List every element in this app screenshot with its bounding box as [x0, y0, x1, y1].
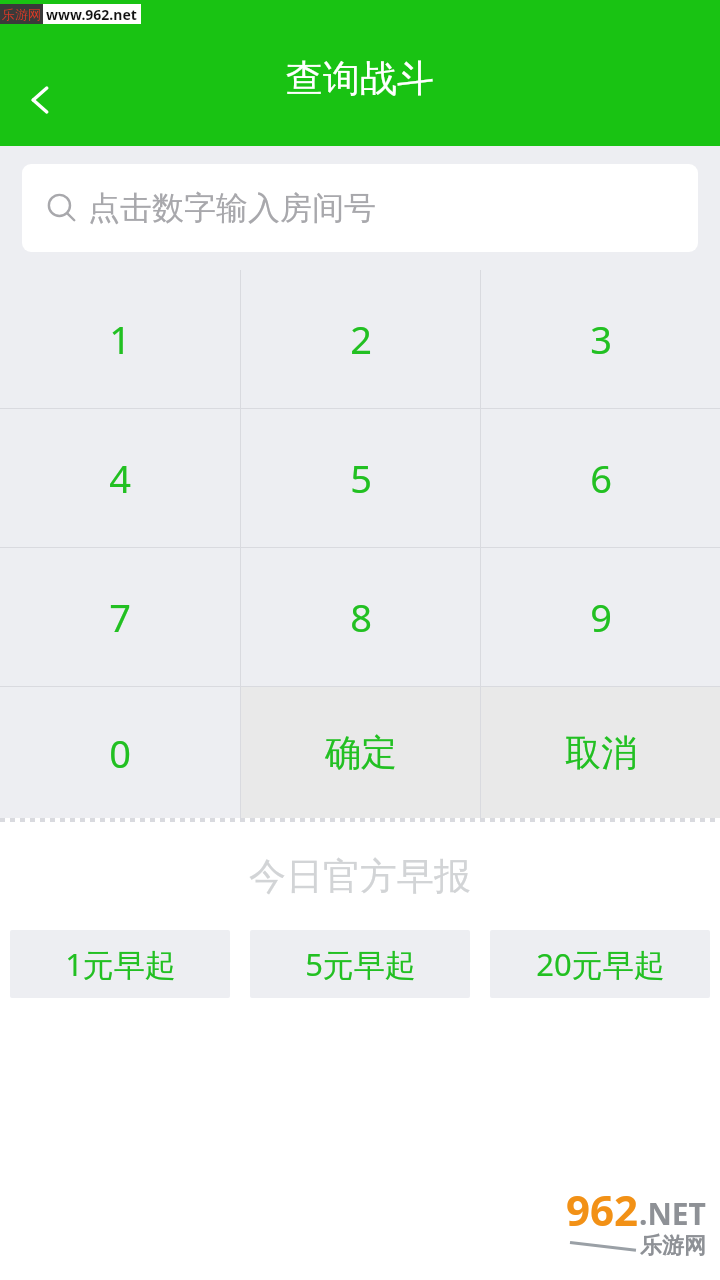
- staticText: 乐游网: [640, 1232, 706, 1260]
- staticText: 取消: [565, 730, 637, 775]
- button[interactable]: 20元早起: [490, 930, 710, 998]
- staticText: 1: [109, 313, 131, 365]
- button[interactable]: 8: [241, 548, 480, 686]
- button[interactable]: 1元早起: [10, 930, 230, 998]
- staticText: 5: [350, 452, 372, 504]
- button[interactable]: 4: [0, 409, 240, 547]
- staticText: .NET: [639, 1193, 706, 1234]
- button[interactable]: 9: [481, 548, 720, 686]
- staticText: 乐游网: [2, 6, 41, 22]
- staticText: 1元早起: [65, 943, 176, 985]
- button[interactable]: 2: [241, 270, 480, 408]
- staticText: 4: [109, 452, 131, 504]
- staticText: 20元早起: [536, 943, 665, 985]
- staticText: 6: [590, 452, 612, 504]
- staticText: 8: [350, 591, 372, 643]
- staticText: 2: [350, 313, 372, 365]
- button[interactable]: 3: [481, 270, 720, 408]
- button[interactable]: 5元早起: [250, 930, 470, 998]
- staticText: 9: [590, 591, 612, 643]
- staticText: 查询战斗: [286, 55, 434, 102]
- button[interactable]: 确定: [241, 687, 480, 818]
- staticText: 点击数字输入房间号: [88, 188, 376, 228]
- staticText: 3: [590, 313, 612, 365]
- staticText: 5元早起: [305, 943, 416, 985]
- button[interactable]: 6: [481, 409, 720, 547]
- button[interactable]: 点击数字输入房间号: [22, 164, 698, 252]
- staticText: 确定: [325, 730, 397, 775]
- staticText: 962: [566, 1181, 639, 1238]
- button[interactable]: 5: [241, 409, 480, 547]
- button[interactable]: 1: [0, 270, 240, 408]
- staticText: 7: [109, 591, 131, 643]
- button[interactable]: 0: [0, 687, 240, 818]
- staticText: 今日官方早报: [249, 853, 471, 900]
- button[interactable]: Back: [8, 66, 76, 134]
- staticText: www.962.net: [46, 5, 137, 24]
- staticText: 0: [109, 727, 131, 779]
- button[interactable]: 取消: [481, 687, 720, 818]
- button[interactable]: 7: [0, 548, 240, 686]
